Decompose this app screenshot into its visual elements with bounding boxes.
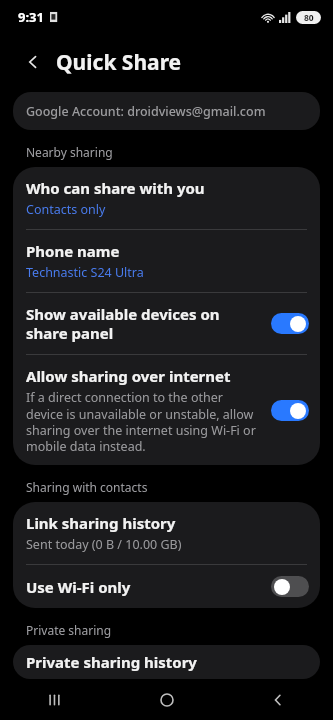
staticText: Sent today (0 B / 10.00 GB) (26, 536, 182, 553)
button[interactable]: Phone name (13, 230, 320, 292)
staticText: 9:31 (18, 8, 44, 26)
staticText: Technastic S24 Ultra (26, 264, 144, 281)
button[interactable]: Toggle off (271, 576, 309, 597)
staticText: Phone name (26, 241, 120, 261)
staticText: Private sharing history (26, 652, 197, 672)
staticText: 80 (304, 12, 314, 24)
button[interactable]: Show available devices on share panel (13, 293, 320, 354)
button[interactable]: Home (143, 680, 191, 720)
button[interactable]: Toggle on (271, 400, 309, 421)
button[interactable]: Recent apps (32, 680, 80, 720)
button[interactable]: Allow sharing over internet (13, 355, 320, 465)
staticText: Who can share with you (26, 178, 205, 198)
button[interactable]: Toggle on (271, 313, 309, 334)
staticText: Private sharing (26, 622, 112, 638)
button[interactable]: Google Account: droidviews@gmail.com (13, 92, 320, 130)
staticText: Sharing with contacts (26, 479, 148, 495)
staticText: Show available devices on share panel (26, 304, 261, 343)
staticText: Quick Share (56, 48, 182, 77)
button[interactable]: Who can share with you (13, 167, 320, 229)
staticText: Use Wi-Fi only (26, 577, 131, 597)
button[interactable]: Link sharing history (13, 502, 320, 564)
staticText: Link sharing history (26, 513, 176, 533)
staticText: Nearby sharing (26, 144, 113, 160)
button[interactable]: Back (18, 47, 48, 77)
button[interactable]: Back (254, 680, 302, 720)
button[interactable]: Private sharing history (13, 645, 320, 679)
button[interactable]: Use Wi-Fi only (13, 565, 320, 608)
staticText: Google Account: droidviews@gmail.com (26, 103, 266, 120)
staticText: Allow sharing over internet (26, 366, 231, 386)
staticText: If a direct connection to the other devi… (26, 389, 261, 454)
staticText: Contacts only (26, 201, 106, 218)
